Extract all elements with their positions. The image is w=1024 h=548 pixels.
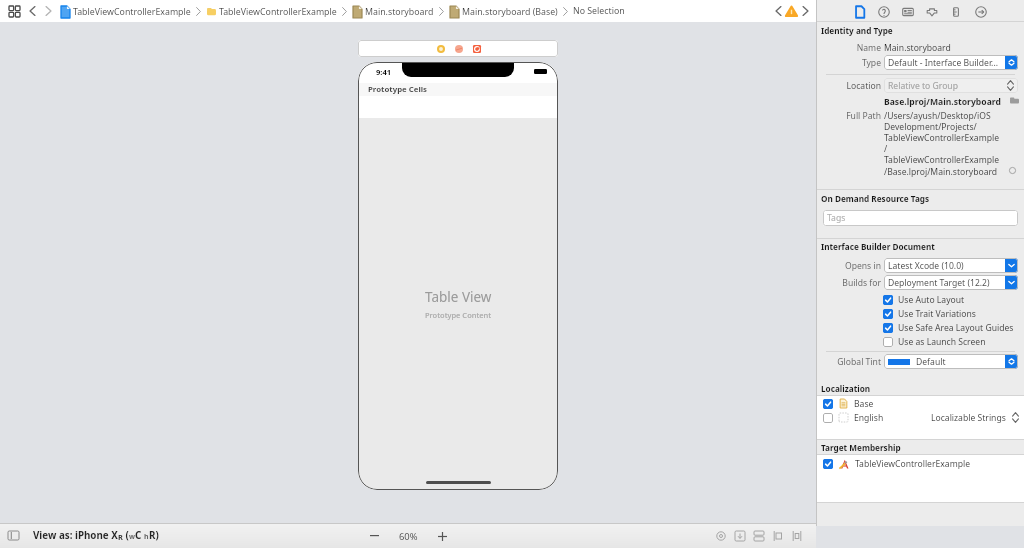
button[interactable]: Canvas option 1 — [713, 528, 729, 544]
staticText: Global Tint — [817, 356, 881, 368]
staticText: Use Trait Variations — [898, 308, 976, 320]
staticText: Deployment Target (12.2) — [888, 277, 1005, 289]
button[interactable]: Base — [823, 397, 1024, 410]
staticText: R) — [149, 529, 159, 542]
staticText: Full Path — [817, 110, 881, 122]
button[interactable]: Show navigator — [6, 3, 22, 19]
button[interactable]: Relative to Group — [884, 78, 1018, 93]
button[interactable]: Go back — [26, 5, 38, 17]
staticText: Prototype Cells — [368, 84, 427, 95]
button[interactable]: Toggle document outline — [8, 531, 19, 540]
staticText: 60% — [399, 530, 418, 543]
staticText: English — [854, 412, 884, 424]
staticText: Prototype Content — [425, 310, 492, 320]
staticText: w — [129, 532, 135, 542]
button[interactable]: Canvas option 2 — [732, 528, 748, 544]
staticText: /Users/ayush/Desktop/iOS — [884, 110, 991, 122]
button[interactable]: Exit — [471, 43, 482, 54]
button[interactable]: TableViewControllerExample — [823, 457, 1024, 470]
staticText: C — [135, 529, 144, 542]
staticText: Localization — [821, 383, 871, 394]
staticText: Use Safe Area Layout Guides — [898, 322, 1014, 334]
staticText: Base — [854, 398, 874, 410]
button[interactable]: Identity inspector — [901, 5, 915, 18]
button[interactable]: Canvas option 3 — [751, 528, 767, 544]
button[interactable]: Connections inspector — [974, 5, 988, 18]
staticText: R — [118, 532, 123, 542]
button[interactable]: Go back — [772, 5, 784, 17]
staticText: ( — [123, 529, 129, 542]
staticText: Table View — [425, 288, 492, 306]
button[interactable]: Use Trait Variations — [883, 307, 976, 320]
staticText: /Base.lproj/Main.storyboard — [884, 166, 998, 178]
button[interactable]: Main.storyboard (Base) — [449, 5, 558, 18]
staticText: Relative to Group — [888, 80, 1006, 92]
button[interactable]: Zoom in — [435, 529, 449, 543]
button[interactable]: Go forward — [799, 5, 811, 17]
staticText: Localizable Strings — [931, 412, 1006, 424]
staticText: View as: iPhone X — [33, 529, 118, 542]
staticText: Tags — [827, 212, 846, 224]
staticText: / — [884, 143, 888, 155]
button[interactable]: Change value — [1011, 412, 1019, 423]
staticText: Default - Interface Builder... — [888, 57, 1005, 69]
staticText: TableViewControllerExample — [855, 458, 971, 470]
staticText: On Demand Resource Tags — [821, 193, 930, 204]
button[interactable]: Attributes inspector — [925, 5, 939, 18]
staticText: Main.storyboard — [365, 6, 434, 18]
button[interactable]: Use Auto Layout — [883, 293, 965, 306]
button[interactable]: Canvas option 4 — [770, 528, 786, 544]
button[interactable]: Default - Interface Builder... — [884, 55, 1018, 70]
button[interactable]: View Controller — [435, 43, 446, 54]
button[interactable]: Reveal in Finder — [1010, 97, 1019, 104]
staticText: Default — [916, 356, 1005, 368]
staticText: Location — [817, 80, 881, 92]
button[interactable]: Zoom out — [367, 529, 381, 543]
staticText: Latest Xcode (10.0) — [888, 260, 1005, 272]
staticText: TableViewControllerExample — [219, 6, 337, 18]
staticText: 9:41 — [376, 67, 392, 77]
button[interactable]: Main.storyboard — [352, 5, 434, 18]
staticText: No Selection — [573, 5, 625, 17]
staticText: TableViewControllerExample — [73, 6, 191, 18]
staticText: Base.lproj/Main.storyboard — [884, 96, 1001, 108]
staticText: Identity and Type — [821, 25, 893, 36]
staticText: Main.storyboard — [884, 42, 951, 54]
button[interactable]: Use as Launch Screen — [883, 335, 986, 348]
staticText: Opens in — [817, 260, 881, 272]
button[interactable]: First Responder — [453, 43, 464, 54]
staticText: Use as Launch Screen — [898, 336, 986, 348]
button[interactable]: File inspector — [853, 5, 867, 18]
staticText: Development/Projects/ — [884, 121, 977, 133]
button[interactable]: Latest Xcode (10.0) — [884, 258, 1018, 273]
staticText: Main.storyboard (Base) — [462, 6, 558, 18]
staticText: Target Membership — [821, 442, 901, 453]
button[interactable]: Size inspector — [949, 5, 963, 18]
button[interactable]: Path options — [1009, 167, 1016, 174]
button[interactable]: Canvas option 5 — [789, 528, 805, 544]
button[interactable]: Default — [884, 354, 1018, 369]
staticText: TableViewControllerExample — [884, 154, 1000, 166]
staticText: Use Auto Layout — [898, 294, 965, 306]
button[interactable]: Tags — [823, 210, 1018, 226]
button[interactable]: Issue — [786, 6, 797, 17]
button[interactable]: Quick help — [877, 5, 891, 18]
staticText: TableViewControllerExample — [884, 132, 1000, 144]
button[interactable]: TableViewControllerExample — [206, 5, 337, 18]
staticText: h — [144, 532, 149, 542]
button[interactable]: Deployment Target (12.2) — [884, 275, 1018, 290]
button[interactable]: English — [823, 411, 1019, 424]
staticText: Type — [817, 57, 881, 69]
button[interactable]: Go forward — [42, 5, 54, 17]
staticText: Builds for — [817, 277, 881, 289]
button[interactable]: Change value — [1006, 80, 1014, 91]
staticText: Interface Builder Document — [821, 241, 935, 252]
button[interactable]: TableViewControllerExample — [60, 5, 191, 18]
button[interactable]: Use Safe Area Layout Guides — [883, 321, 1014, 334]
staticText: Name — [817, 42, 881, 54]
